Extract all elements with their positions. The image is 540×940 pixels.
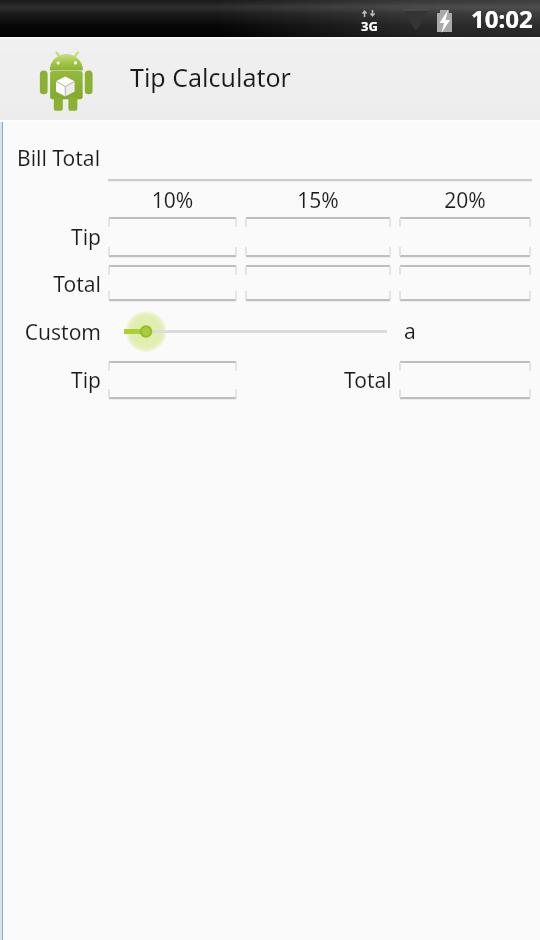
staticText: 15% <box>245 186 391 215</box>
staticText: Tip <box>0 366 101 395</box>
staticText: 3G <box>361 17 378 35</box>
staticText: Total <box>344 366 392 395</box>
staticText: 10:02 <box>471 2 533 35</box>
button[interactable] <box>245 265 391 301</box>
button[interactable] <box>245 217 391 257</box>
button[interactable] <box>399 361 531 399</box>
button[interactable] <box>108 217 237 257</box>
button[interactable] <box>399 265 531 301</box>
button[interactable]: Status bar <box>0 0 540 37</box>
staticText: 10% <box>108 186 237 215</box>
staticText: 20% <box>399 186 531 215</box>
button[interactable]: Custom tip percentage slider <box>108 308 398 356</box>
button[interactable] <box>108 142 532 181</box>
button[interactable] <box>108 361 237 399</box>
staticText: Bill Total <box>17 144 101 173</box>
staticText: Total <box>0 270 101 299</box>
button[interactable] <box>108 265 237 301</box>
staticText: Tip <box>0 223 101 252</box>
staticText: Tip Calculator <box>130 60 291 94</box>
button[interactable] <box>399 217 531 257</box>
staticText: a <box>404 317 416 346</box>
staticText: Custom <box>0 318 101 347</box>
